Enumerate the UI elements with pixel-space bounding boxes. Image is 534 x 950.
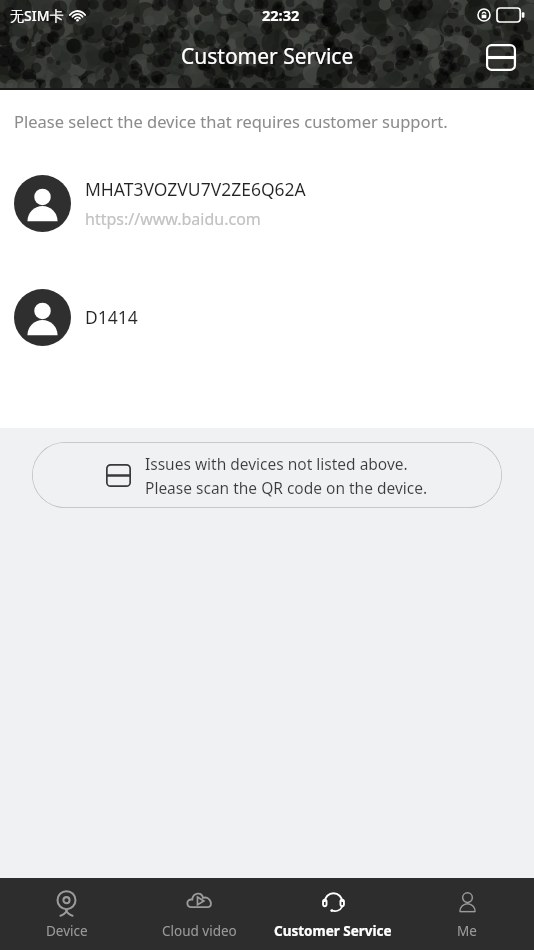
staticText: Customer Service [181, 42, 354, 71]
button[interactable]: Me [400, 878, 534, 950]
staticText: Me [457, 922, 477, 940]
staticText: Device [46, 922, 88, 940]
button[interactable]: Cloud video [133, 878, 266, 950]
button[interactable]: Devices [478, 34, 524, 80]
staticText: https://www.baidu.com [85, 208, 261, 230]
button[interactable]: MHAT3VOZVU7V2ZE6Q62A [0, 168, 534, 238]
button[interactable]: D1414 [0, 282, 534, 352]
staticText: 无SIM卡 [10, 6, 64, 25]
staticText: Issues with devices not listed above. [145, 453, 408, 474]
button[interactable]: Device [0, 878, 133, 950]
staticText: MHAT3VOZVU7V2ZE6Q62A [85, 177, 306, 201]
staticText: D1414 [85, 305, 138, 329]
staticText: Please select the device that requires c… [14, 110, 448, 132]
staticText: Customer Service [274, 922, 392, 940]
staticText: Please scan the QR code on the device. [145, 477, 428, 498]
staticText: 22:32 [262, 5, 300, 25]
button[interactable]: Customer Service [266, 878, 400, 950]
staticText: Cloud video [162, 922, 237, 940]
button[interactable]: Issues with devices not listed above. [32, 442, 502, 508]
